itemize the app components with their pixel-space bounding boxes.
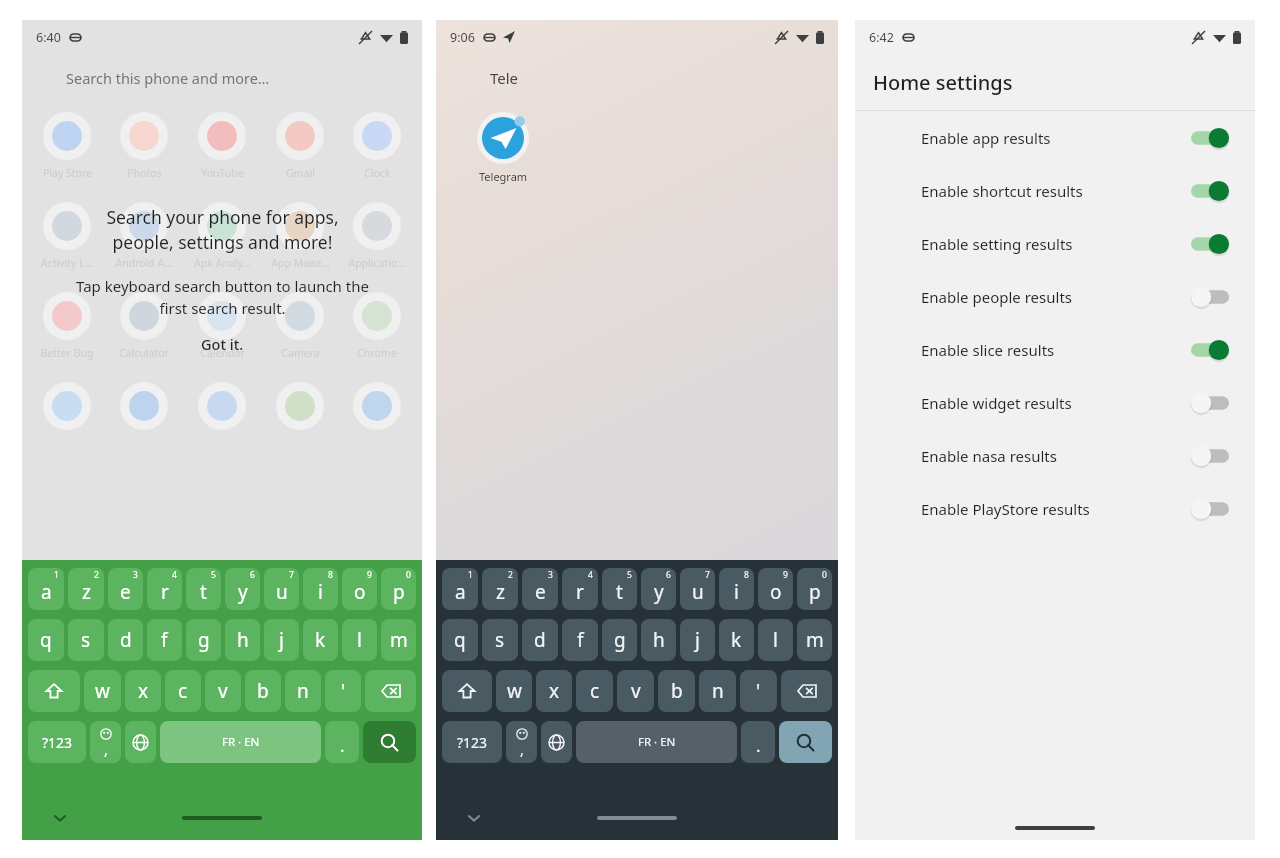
button[interactable]: x: [536, 670, 572, 712]
button[interactable]: Emoji and comma: [506, 721, 537, 763]
button[interactable]: [111, 382, 177, 430]
button[interactable]: Enable setting results: [855, 217, 1255, 270]
button[interactable]: 9: [758, 568, 793, 610]
button[interactable]: Backspace: [365, 670, 416, 712]
button[interactable]: c: [576, 670, 613, 712]
button[interactable]: w: [84, 670, 121, 712]
button[interactable]: d: [522, 619, 558, 661]
button[interactable]: 1: [442, 568, 478, 610]
button[interactable]: d: [108, 619, 143, 661]
button[interactable]: g: [602, 619, 637, 661]
button[interactable]: 5: [186, 568, 221, 610]
button[interactable]: Chrome: [344, 292, 410, 360]
button[interactable]: Search this phone and more…: [22, 54, 422, 102]
button[interactable]: Search: [363, 721, 416, 763]
button[interactable]: Play Store: [34, 112, 100, 180]
button[interactable]: 2: [68, 568, 104, 610]
button[interactable]: Apk Analy…: [189, 202, 255, 270]
button[interactable]: Got it.: [187, 331, 258, 357]
button[interactable]: Android A…: [111, 202, 177, 270]
button[interactable]: v: [205, 670, 241, 712]
button[interactable]: 4: [147, 568, 182, 610]
button[interactable]: 0: [797, 568, 832, 610]
button[interactable]: Search: [779, 721, 832, 763]
button[interactable]: Emoji and comma: [90, 721, 121, 763]
button[interactable]: b: [658, 670, 695, 712]
button[interactable]: ?123: [442, 721, 502, 763]
button[interactable]: 7: [680, 568, 715, 610]
button[interactable]: [34, 382, 100, 430]
button[interactable]: f: [562, 619, 598, 661]
button[interactable]: Enable PlayStore results: [855, 482, 1255, 535]
button[interactable]: f: [147, 619, 182, 661]
button[interactable]: ': [740, 670, 777, 712]
button[interactable]: FR · EN: [576, 721, 737, 763]
button[interactable]: [189, 382, 255, 430]
button[interactable]: YouTube: [189, 112, 255, 180]
button[interactable]: q: [442, 619, 478, 661]
button[interactable]: Enable nasa results: [855, 429, 1255, 482]
button[interactable]: 8: [719, 568, 754, 610]
button[interactable]: Shift: [442, 670, 492, 712]
button[interactable]: 0: [381, 568, 416, 610]
button[interactable]: Enable widget results: [855, 376, 1255, 429]
button[interactable]: c: [165, 670, 201, 712]
button[interactable]: Clock: [344, 112, 410, 180]
button[interactable]: m: [797, 619, 832, 661]
button[interactable]: FR · EN: [160, 721, 321, 763]
button[interactable]: Camera: [267, 292, 333, 360]
button[interactable]: x: [125, 670, 161, 712]
button[interactable]: [267, 382, 333, 430]
button[interactable]: .: [325, 721, 359, 763]
button[interactable]: Gmail: [267, 112, 333, 180]
button[interactable]: q: [28, 619, 64, 661]
button[interactable]: h: [225, 619, 260, 661]
button[interactable]: j: [680, 619, 715, 661]
button[interactable]: 3: [108, 568, 143, 610]
button[interactable]: Enable people results: [855, 270, 1255, 323]
button[interactable]: n: [285, 670, 321, 712]
button[interactable]: App Mana…: [267, 202, 333, 270]
button[interactable]: Tele: [436, 54, 838, 102]
button[interactable]: 6: [641, 568, 676, 610]
button[interactable]: ?123: [28, 721, 86, 763]
button[interactable]: 2: [482, 568, 518, 610]
button[interactable]: Photos: [111, 112, 177, 180]
button[interactable]: 5: [602, 568, 637, 610]
button[interactable]: Calculator: [111, 292, 177, 360]
button[interactable]: Applicatio…: [344, 202, 410, 270]
button[interactable]: l: [758, 619, 793, 661]
button[interactable]: Telegram: [470, 112, 536, 184]
button[interactable]: w: [496, 670, 532, 712]
button[interactable]: 4: [562, 568, 598, 610]
button[interactable]: Shift: [28, 670, 80, 712]
button[interactable]: b: [245, 670, 281, 712]
button[interactable]: k: [719, 619, 754, 661]
button[interactable]: Backspace: [781, 670, 832, 712]
button[interactable]: v: [617, 670, 654, 712]
button[interactable]: 7: [264, 568, 299, 610]
button[interactable]: 8: [303, 568, 338, 610]
button[interactable]: 3: [522, 568, 558, 610]
button[interactable]: j: [264, 619, 299, 661]
button[interactable]: g: [186, 619, 221, 661]
button[interactable]: n: [699, 670, 736, 712]
button[interactable]: Change language: [125, 721, 156, 763]
button[interactable]: Enable app results: [855, 111, 1255, 164]
button[interactable]: Change language: [541, 721, 572, 763]
button[interactable]: 9: [342, 568, 377, 610]
button[interactable]: Enable shortcut results: [855, 164, 1255, 217]
button[interactable]: Better Bug: [34, 292, 100, 360]
button[interactable]: l: [342, 619, 377, 661]
button[interactable]: 1: [28, 568, 64, 610]
button[interactable]: s: [68, 619, 104, 661]
button[interactable]: 6: [225, 568, 260, 610]
button[interactable]: h: [641, 619, 676, 661]
button[interactable]: Enable slice results: [855, 323, 1255, 376]
button[interactable]: k: [303, 619, 338, 661]
button[interactable]: [344, 382, 410, 430]
button[interactable]: s: [482, 619, 518, 661]
button[interactable]: Calendar: [189, 292, 255, 360]
button[interactable]: Activity L…: [34, 202, 100, 270]
button[interactable]: m: [381, 619, 416, 661]
